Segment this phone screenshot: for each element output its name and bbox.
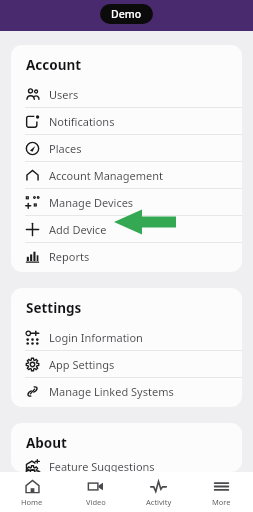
button[interactable]: Manage Linked Systems bbox=[11, 378, 242, 404]
button[interactable]: Users bbox=[11, 81, 242, 107]
staticText: Reports bbox=[49, 249, 90, 264]
staticText: Demo bbox=[111, 7, 142, 21]
button[interactable]: More bbox=[190, 472, 253, 512]
button[interactable]: Manage Devices bbox=[11, 189, 242, 215]
staticText: Home bbox=[21, 497, 43, 507]
button[interactable]: Reports bbox=[11, 243, 242, 269]
staticText: Video bbox=[86, 497, 106, 507]
staticText: Places bbox=[49, 141, 82, 156]
button[interactable]: Home bbox=[0, 472, 64, 512]
staticText: Manage Devices bbox=[49, 195, 134, 210]
button[interactable]: Video bbox=[64, 472, 127, 512]
staticText: Account Management bbox=[49, 168, 164, 183]
staticText: More bbox=[212, 497, 231, 507]
staticText: Feature Suggestions bbox=[49, 459, 155, 472]
staticText: Users bbox=[49, 87, 79, 102]
staticText: Add Device bbox=[49, 222, 107, 237]
button[interactable]: Account Management bbox=[11, 162, 242, 188]
staticText: Activity bbox=[146, 497, 172, 507]
button[interactable]: App Settings bbox=[11, 351, 242, 377]
staticText: Manage Linked Systems bbox=[49, 384, 174, 399]
staticText: Login Information bbox=[49, 330, 143, 345]
staticText: Settings bbox=[26, 299, 82, 317]
button[interactable]: Feature Suggestions bbox=[11, 459, 242, 472]
staticText: Account bbox=[26, 56, 82, 74]
button[interactable]: Places bbox=[11, 135, 242, 161]
button[interactable]: Notifications bbox=[11, 108, 242, 134]
staticText: About bbox=[26, 434, 67, 452]
button[interactable]: Add Device bbox=[11, 216, 242, 242]
button[interactable]: Activity bbox=[127, 472, 190, 512]
button[interactable]: Login Information bbox=[11, 324, 242, 350]
staticText: App Settings bbox=[49, 357, 115, 372]
staticText: Notifications bbox=[49, 114, 115, 129]
